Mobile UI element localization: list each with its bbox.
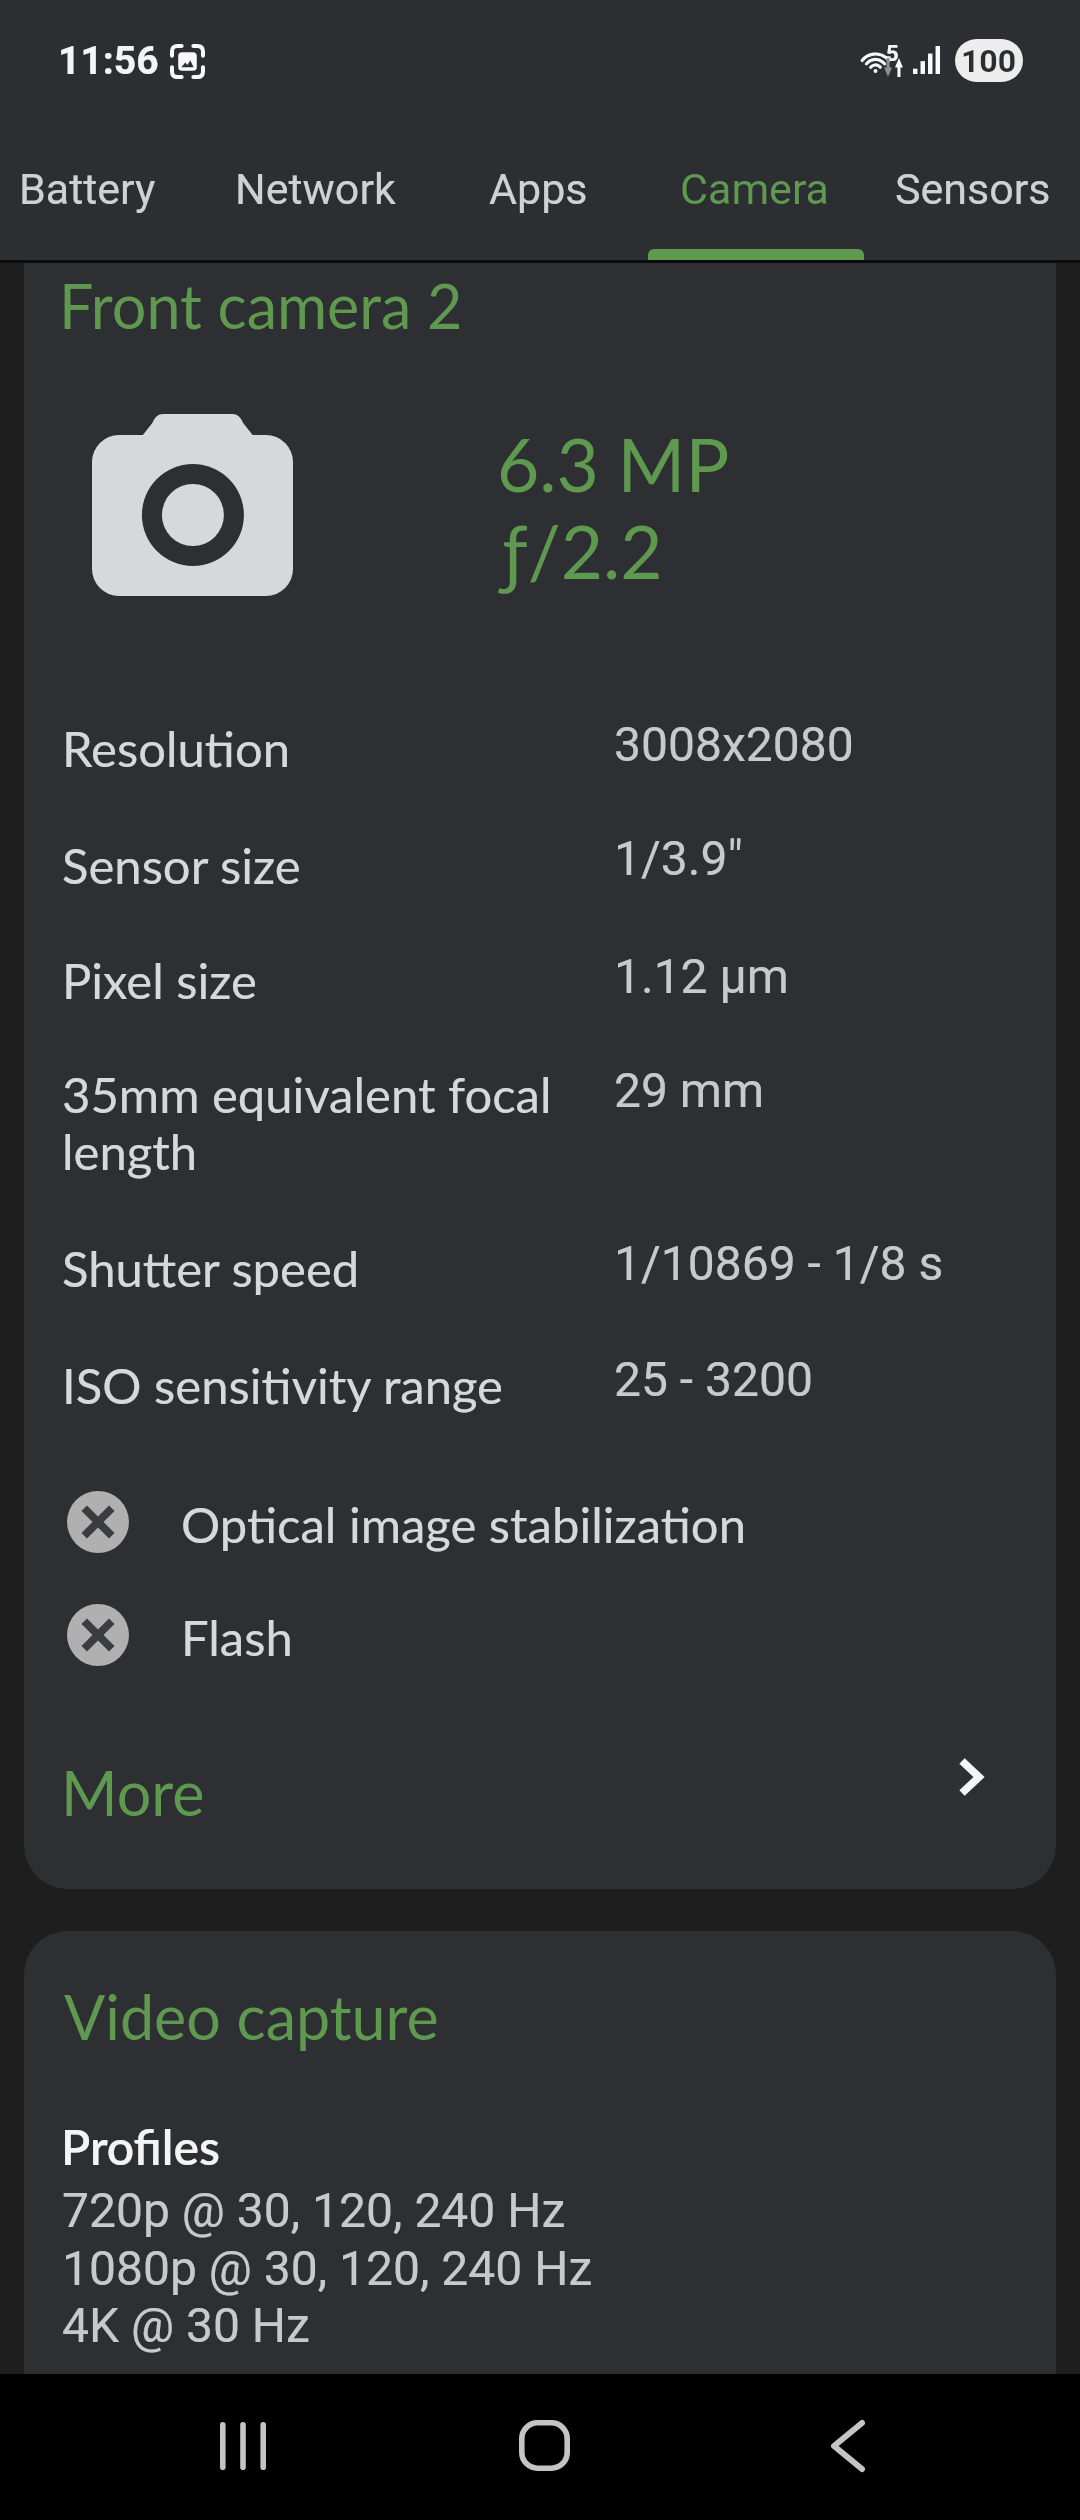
staticText: Front camera 2 — [59, 269, 463, 342]
button[interactable]: ISO sensitivity range — [24, 1332, 1056, 1444]
staticText: 4K @ 30 Hz — [62, 2297, 310, 2353]
button[interactable]: Network — [207, 124, 423, 254]
staticText: ƒ/2.2 — [503, 507, 663, 595]
button[interactable]: Resolution — [24, 695, 1056, 807]
button[interactable]: Back — [781, 2374, 925, 2520]
staticText: Apps — [489, 164, 588, 214]
staticText: Flash — [181, 1608, 293, 1667]
staticText: More — [61, 1756, 205, 1829]
staticText: 25 - 3200 — [614, 1351, 813, 1407]
staticText: Battery — [19, 164, 156, 214]
button[interactable]: Recent apps — [172, 2374, 316, 2520]
button[interactable]: More — [24, 1736, 1056, 1883]
staticText: Sensors — [895, 164, 1051, 214]
staticText: 35mm equivalent focal length — [62, 1065, 582, 1180]
staticText: 29 mm — [614, 1062, 765, 1118]
staticText: 5 — [886, 41, 899, 67]
button[interactable]: Pixel size — [24, 927, 1056, 1039]
staticText: 1/3.9" — [614, 830, 743, 886]
button[interactable]: Home — [471, 2374, 615, 2520]
button[interactable]: Sensors — [865, 124, 1080, 254]
staticText: Camera — [680, 164, 830, 214]
staticText: Profiles — [61, 2118, 220, 2176]
staticText: 1.12 µm — [614, 948, 789, 1004]
staticText: Sensor size — [62, 836, 582, 895]
staticText: ISO sensitivity range — [62, 1356, 582, 1415]
staticText: 11:56 — [58, 38, 159, 84]
button[interactable]: Optical image stabilization — [24, 1466, 1056, 1579]
staticText: 3008x2080 — [614, 716, 854, 772]
button[interactable]: Camera — [647, 124, 863, 254]
staticText: 100 — [961, 42, 1017, 80]
staticText: Video capture — [64, 1980, 439, 2053]
staticText: Pixel size — [62, 951, 582, 1010]
staticText: 6.3 MP — [497, 420, 730, 508]
button[interactable]: Shutter speed — [24, 1215, 1056, 1327]
button[interactable]: Flash — [24, 1579, 1056, 1692]
staticText: 1080p @ 30, 120, 240 Hz — [62, 2240, 593, 2296]
button[interactable]: Sensor size — [24, 812, 1056, 924]
staticText: Resolution — [62, 719, 582, 778]
button[interactable]: 35mm equivalent focal length — [24, 1041, 1056, 1211]
staticText: 720p @ 30, 120, 240 Hz — [62, 2182, 566, 2238]
staticText: Shutter speed — [62, 1239, 582, 1298]
staticText: Network — [235, 164, 396, 214]
button[interactable]: Apps — [430, 124, 646, 254]
staticText: 1/10869 - 1/8 s — [614, 1235, 944, 1291]
staticText: Optical image stabilization — [181, 1495, 746, 1554]
button[interactable]: Battery — [0, 124, 195, 254]
